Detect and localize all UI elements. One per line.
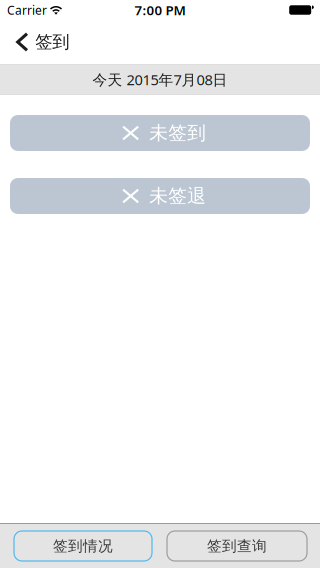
staticText: 7:00 PM — [134, 1, 185, 19]
staticText: 未签退 — [149, 184, 206, 207]
staticText: Carrier — [7, 2, 47, 18]
staticText: 签到情况 — [53, 537, 113, 555]
staticText: 未签到 — [149, 121, 206, 144]
button[interactable]: 未签到 — [10, 115, 310, 151]
button[interactable]: 签到情况 — [14, 531, 152, 561]
staticText: 签到 — [35, 31, 69, 53]
button[interactable]: 签到 — [0, 20, 79, 64]
button[interactable]: 未签退 — [10, 178, 310, 214]
staticText: 签到查询 — [207, 537, 267, 555]
staticText: 今天 2015年7月08日 — [92, 70, 227, 89]
button[interactable]: 签到查询 — [167, 531, 307, 561]
